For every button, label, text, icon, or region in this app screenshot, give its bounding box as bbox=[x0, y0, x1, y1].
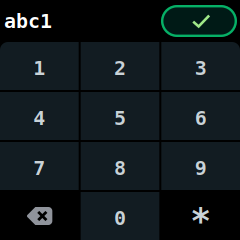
button[interactable]: 3 bbox=[161, 42, 240, 90]
staticText: abc1 bbox=[4, 10, 52, 32]
staticText: 0 bbox=[114, 207, 126, 229]
staticText: 2 bbox=[114, 57, 126, 79]
button[interactable]: Asterisk bbox=[161, 192, 240, 240]
button[interactable]: 2 bbox=[81, 42, 159, 90]
button[interactable]: 8 bbox=[81, 142, 159, 190]
staticText: * bbox=[190, 201, 211, 240]
staticText: 6 bbox=[195, 107, 207, 129]
staticText: 1 bbox=[33, 57, 45, 79]
button[interactable]: Done bbox=[161, 5, 237, 37]
button[interactable]: 4 bbox=[0, 92, 79, 140]
button[interactable]: 7 bbox=[0, 142, 79, 190]
button[interactable]: Delete bbox=[0, 192, 79, 240]
staticText: 3 bbox=[195, 57, 207, 79]
staticText: 9 bbox=[195, 157, 207, 179]
staticText: 8 bbox=[114, 157, 126, 179]
button[interactable]: 6 bbox=[161, 92, 240, 140]
staticText: 7 bbox=[33, 157, 45, 179]
staticText: 5 bbox=[114, 107, 126, 129]
button[interactable]: 0 bbox=[81, 192, 159, 240]
staticText: 4 bbox=[33, 107, 45, 129]
button[interactable]: 9 bbox=[161, 142, 240, 190]
button[interactable]: 5 bbox=[81, 92, 159, 140]
button[interactable]: 1 bbox=[0, 42, 79, 90]
